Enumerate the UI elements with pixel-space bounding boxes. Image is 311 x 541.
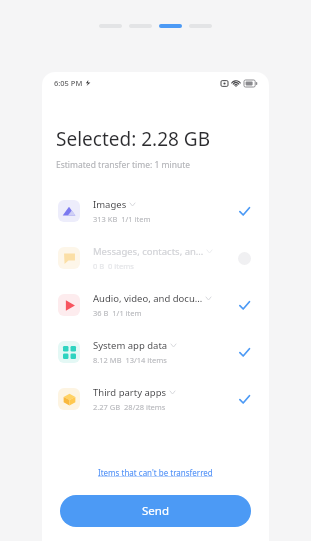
button[interactable]: Images bbox=[42, 187, 269, 234]
button[interactable]: Selected bbox=[235, 390, 253, 408]
button[interactable]: Send bbox=[60, 495, 251, 527]
button[interactable]: Selected bbox=[235, 296, 253, 314]
staticText: 8.12 MB 13/14 items bbox=[93, 355, 167, 365]
staticText: Items that can't be transferred bbox=[98, 467, 213, 478]
button[interactable]: Selected bbox=[235, 202, 253, 220]
staticText: 0 B 0 items bbox=[93, 261, 134, 271]
staticText: 36 B 1/1 item bbox=[93, 308, 142, 318]
staticText: Estimated transfer time: 1 minute bbox=[56, 159, 191, 171]
staticText: Images bbox=[93, 198, 127, 211]
staticText: Messages, contacts, an… bbox=[93, 245, 204, 258]
button[interactable]: Third party apps bbox=[42, 375, 269, 422]
button[interactable]: Items that can't be transferred bbox=[42, 464, 269, 481]
staticText: 2.27 GB 28/28 items bbox=[93, 402, 166, 412]
button[interactable]: Messages, contacts, an… bbox=[42, 234, 269, 281]
button[interactable]: Not selected bbox=[235, 249, 253, 267]
staticText: Audio, video, and docu… bbox=[93, 292, 203, 305]
button[interactable]: Audio, video, and docu… bbox=[42, 281, 269, 328]
staticText: 313 KB 1/1 item bbox=[93, 214, 151, 224]
button[interactable]: Selected bbox=[235, 343, 253, 361]
button[interactable]: System app data bbox=[42, 328, 269, 375]
staticText: Selected: 2.28 GB bbox=[56, 126, 210, 152]
staticText: Third party apps bbox=[93, 386, 167, 399]
staticText: Send bbox=[142, 503, 169, 519]
staticText: 6:05 PM bbox=[54, 78, 83, 88]
staticText: System app data bbox=[93, 339, 168, 352]
